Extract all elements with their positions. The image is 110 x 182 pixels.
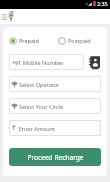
button[interactable]: Select Your Circle (9, 98, 101, 114)
staticText: +91 (12, 59, 21, 66)
button[interactable]: +91 (9, 54, 84, 70)
staticText: Enter Amount (19, 125, 56, 132)
button[interactable]: Postpaid (58, 35, 107, 46)
button[interactable]: ₹ (9, 120, 101, 136)
staticText: ₹ (12, 123, 17, 133)
button[interactable]: Prepaid (9, 35, 58, 46)
staticText: Select Your Circle (19, 103, 64, 110)
staticText: 2:35 (97, 0, 108, 7)
button[interactable]: Pick contact (87, 54, 101, 70)
staticText: Select Operator (19, 81, 60, 88)
staticText: Mobile Number (23, 59, 64, 66)
button[interactable]: Menu (0, 9, 8, 24)
button[interactable]: Select Operator (9, 76, 101, 92)
staticText: Proceed Recharge (27, 153, 84, 162)
staticText: Postpaid (68, 37, 91, 44)
button[interactable]: Proceed Recharge (9, 148, 101, 166)
staticText: Prepaid (19, 37, 39, 44)
